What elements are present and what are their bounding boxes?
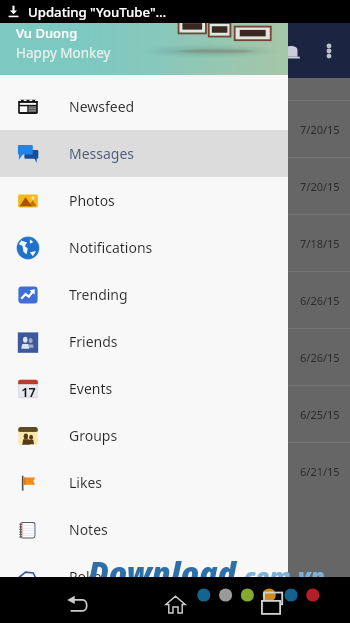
button[interactable]: Newsfeed: [0, 83, 288, 130]
button[interactable]: Trending: [0, 271, 288, 318]
staticText: Download: [88, 551, 237, 593]
button[interactable]: Notes: [0, 506, 288, 553]
staticText: Updating "YouTube"…: [28, 3, 167, 21]
staticText: Photos: [69, 191, 115, 210]
button[interactable]: Recent apps: [257, 591, 283, 617]
staticText: Happy Monkey: [16, 44, 111, 62]
staticText: 7/18/15: [300, 236, 340, 251]
button[interactable]: Friends: [0, 318, 288, 365]
staticText: Friends: [69, 332, 118, 351]
staticText: 6/21/15: [300, 464, 340, 479]
button[interactable]: Likes: [0, 459, 288, 506]
button[interactable]: Photos: [0, 177, 288, 224]
staticText: 7/20/15: [300, 122, 340, 137]
staticText: Trending: [69, 285, 128, 304]
staticText: 6/25/15: [300, 407, 340, 422]
staticText: 7/20/15: [300, 179, 340, 194]
button[interactable]: Notifications: [278, 39, 304, 65]
button[interactable]: 6/25/15: [0, 386, 350, 442]
button[interactable]: Messages: [0, 130, 288, 177]
staticText: Likes: [69, 473, 103, 492]
staticText: Newsfeed: [69, 97, 135, 116]
staticText: 6/26/15: [300, 350, 340, 365]
staticText: .com.vn: [237, 560, 325, 591]
button[interactable]: 7/20/15: [0, 101, 350, 157]
staticText: 17: [21, 384, 36, 401]
staticText: Pokes: [69, 567, 109, 586]
button[interactable]: More options: [315, 37, 343, 65]
button[interactable]: 6/26/15: [0, 329, 350, 385]
staticText: 6/26/15: [300, 293, 340, 308]
staticText: Groups: [69, 426, 118, 445]
staticText: Notifications: [69, 238, 153, 257]
button[interactable]: 17: [0, 365, 288, 412]
button[interactable]: 6/26/15: [0, 272, 350, 328]
button[interactable]: 7/18/15: [0, 215, 350, 271]
staticText: Notes: [69, 520, 108, 539]
staticText: Messages: [69, 144, 135, 163]
button[interactable]: Groups: [0, 412, 288, 459]
button[interactable]: 6/21/15: [0, 443, 350, 499]
button[interactable]: Notifications: [0, 224, 288, 271]
button[interactable]: Back: [58, 585, 96, 623]
button[interactable]: 7/20/15: [0, 158, 350, 214]
staticText: Vu Duong: [16, 24, 78, 42]
staticText: Events: [69, 379, 113, 398]
button[interactable]: Pokes: [0, 553, 288, 600]
button[interactable]: Home: [155, 584, 195, 623]
